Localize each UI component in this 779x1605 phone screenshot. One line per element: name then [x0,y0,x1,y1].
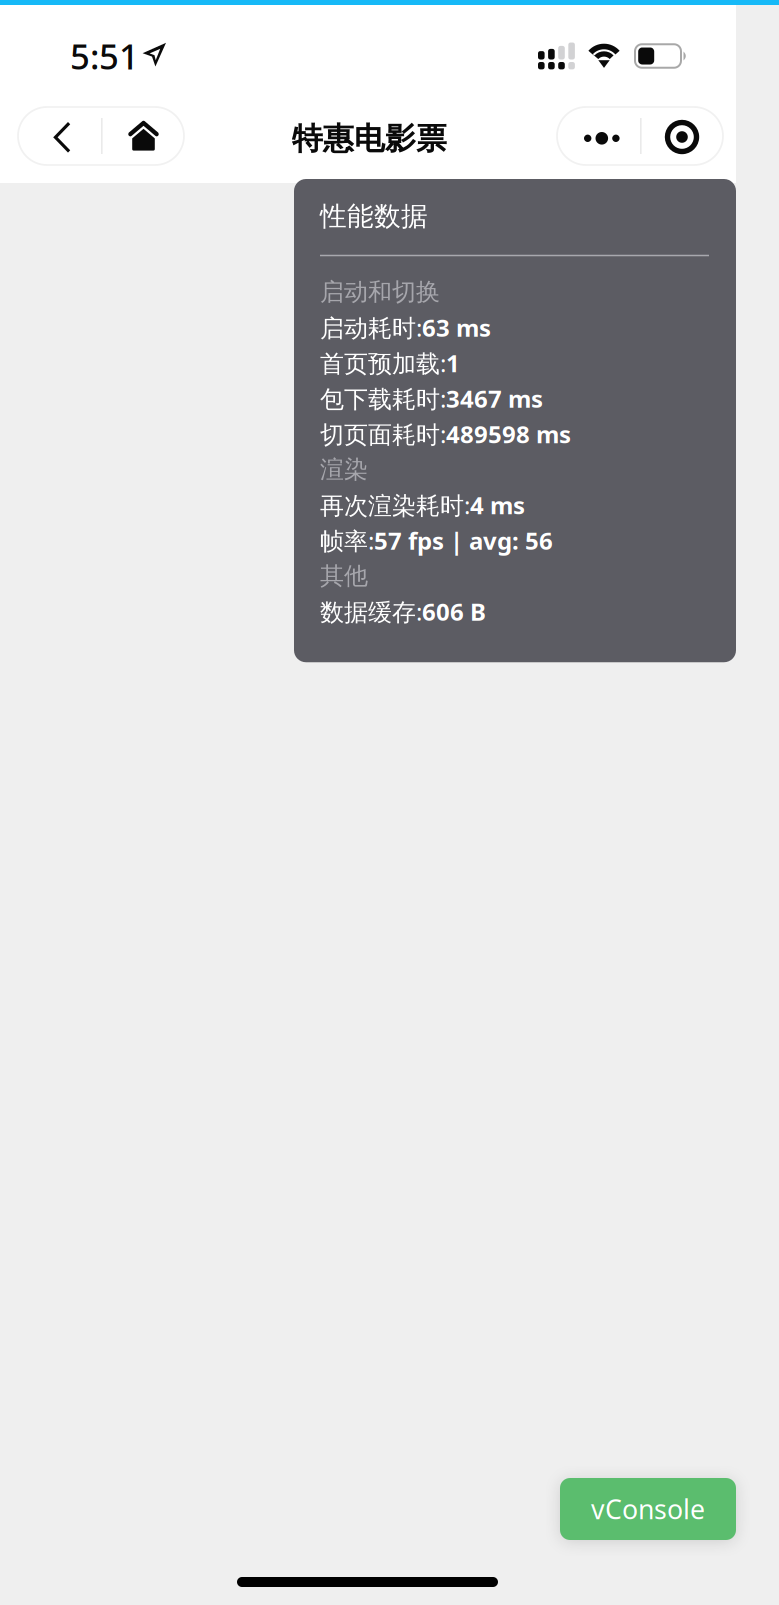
staticText: 489598 ms [446,418,571,450]
button[interactable]: Back [18,107,101,165]
staticText: 606 B [422,596,486,627]
button[interactable]: Close mini program [640,107,723,165]
button[interactable]: vConsole [560,1478,736,1540]
staticText: 首页预加载: [320,347,446,379]
staticText: 1 [446,347,460,379]
staticText: 5:51 [70,33,139,79]
staticText: 包下载耗时: [320,383,446,414]
staticText: 3467 ms [446,383,543,414]
staticText: vConsole [591,1491,705,1527]
staticText: 数据缓存: [320,596,422,627]
staticText: 63 ms [422,312,491,343]
staticText: 其他 [320,561,368,591]
staticText: 启动耗时: [320,312,422,343]
staticText: 4 ms [470,489,525,521]
staticText: 帧率: [320,525,374,556]
staticText: 切页面耗时: [320,418,446,450]
staticText: 渲染 [320,455,368,484]
staticText: 启动和切换 [320,277,440,307]
staticText: 57 fps | avg: 56 [374,525,553,556]
button[interactable]: Home [101,107,184,165]
staticText: 性能数据 [320,200,428,233]
staticText: 再次渲染耗时: [320,489,470,521]
button[interactable]: More options [557,107,640,165]
staticText: 特惠电影票 [292,120,447,158]
